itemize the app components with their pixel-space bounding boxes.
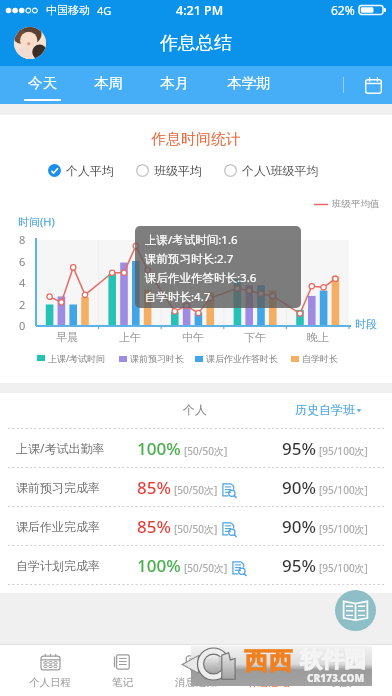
button[interactable]: View detail [232,561,247,576]
staticText: 晚上 [307,330,329,344]
staticText: 85% [137,515,171,538]
staticText: 早晨 [56,330,78,344]
staticText: 历史自学班 [295,402,355,417]
staticText: 消息通知 [175,676,217,689]
staticText: 今天 [28,74,57,92]
staticText: [95/100次] [319,483,368,497]
staticText: CR173.COM [307,671,365,685]
button[interactable]: 班级平均 [136,163,202,178]
staticText: 个人\班级平均 [242,162,319,178]
button[interactable]: 本周 [78,66,139,104]
staticText: 作息时间统计 [0,130,392,149]
staticText: 2 [19,297,26,312]
button[interactable]: 课后作业作答时长 [195,353,278,364]
button[interactable]: Study book [335,590,376,631]
button[interactable]: 课前预习时长 [119,353,184,364]
staticText: 班级平均值 [332,198,380,210]
staticText: [95/100次] [319,522,368,536]
button[interactable]: 本月 [143,66,205,104]
staticText: 90% [282,515,316,538]
button[interactable]: View detail [222,522,237,537]
staticText: 作息总结 [248,676,290,689]
staticText: 4:21 PM [176,2,224,19]
staticText: [95/100次] [319,561,368,575]
button[interactable]: 课后作业完成率 [0,507,392,545]
staticText: 课前预习完成率 [16,480,100,495]
button[interactable]: 自学计划完成率 [0,546,392,584]
staticText: 6 [19,254,26,269]
staticText: 下午 [244,330,266,344]
staticText: 笔记 [112,676,133,689]
button[interactable]: 作息总结 [232,645,305,696]
staticText: 上课/考试出勤率 [16,440,105,456]
staticText: 班级平均 [154,163,202,178]
staticText: [50/50次] [174,483,218,497]
staticText: 100% [137,437,181,460]
staticText: 上午 [119,330,141,344]
staticText: 作息总结 [160,32,232,55]
staticText: 中国移动 [46,3,90,17]
staticText: 时间(H) [18,214,55,229]
staticText: [95/100次] [319,444,368,458]
staticText: [50/50次] [184,561,228,575]
staticText: 课后作业完成率 [16,519,100,534]
button[interactable]: History self-study class [295,402,363,417]
staticText: 课后作业作答时长:3.6 [145,270,257,286]
button[interactable]: 今天 [8,66,77,104]
staticText: 课后作业作答时长 [206,353,278,364]
staticText: 4G [97,3,112,18]
staticText: 8 [19,232,26,247]
staticText: 本周 [94,74,123,92]
staticText: 个人平均 [66,163,114,178]
staticText: 本月 [160,74,189,92]
staticText: 课前预习时长:2.7 [145,251,234,267]
staticText: 90% [282,476,316,499]
button[interactable]: 消息通知 [159,645,232,696]
staticText: [50/50次] [174,522,218,536]
staticText: 中午 [182,330,204,344]
staticText: 62% [331,2,355,18]
button[interactable]: 上课/考试时间 [37,352,106,364]
button[interactable]: 笔记 [86,645,159,696]
staticText: 时段 [355,317,377,331]
staticText: 100% [137,554,181,577]
staticText: 自学时长 [302,353,338,364]
staticText: 课前预习时长 [130,353,184,364]
staticText: 自学时长:4.7 [145,289,211,305]
button[interactable]: Calendar [354,66,392,104]
staticText: 上课/考试时间 [48,352,106,364]
button[interactable]: 本学期 [210,66,287,104]
button[interactable]: 课前预习完成率 [0,468,392,506]
staticText: 西西 [244,646,292,676]
staticText: 85% [137,476,171,499]
button[interactable]: 我的 [305,645,378,696]
staticText: 95% [282,437,316,460]
button[interactable]: 个人平均 [48,163,114,178]
staticText: 个人日程 [29,676,71,689]
button[interactable]: 上课/考试出勤率 [0,429,392,467]
button[interactable]: View detail [222,483,237,498]
staticText: [50/50次] [184,444,228,458]
staticText: 4 [19,275,26,290]
staticText: 0 [19,318,26,333]
staticText: 95% [282,554,316,577]
staticText: 自学计划完成率 [16,558,100,573]
staticText: 软件园 [300,646,366,674]
staticText: 我的 [331,676,352,689]
staticText: 个人 [183,402,207,417]
button[interactable]: 个人日程 [14,645,86,696]
button[interactable]: 自学时长 [291,353,338,364]
staticText: 上课/考试时间:1.6 [145,232,238,248]
button[interactable]: Profile [14,27,46,59]
staticText: 本学期 [227,74,271,92]
button[interactable]: 个人\班级平均 [224,162,319,178]
